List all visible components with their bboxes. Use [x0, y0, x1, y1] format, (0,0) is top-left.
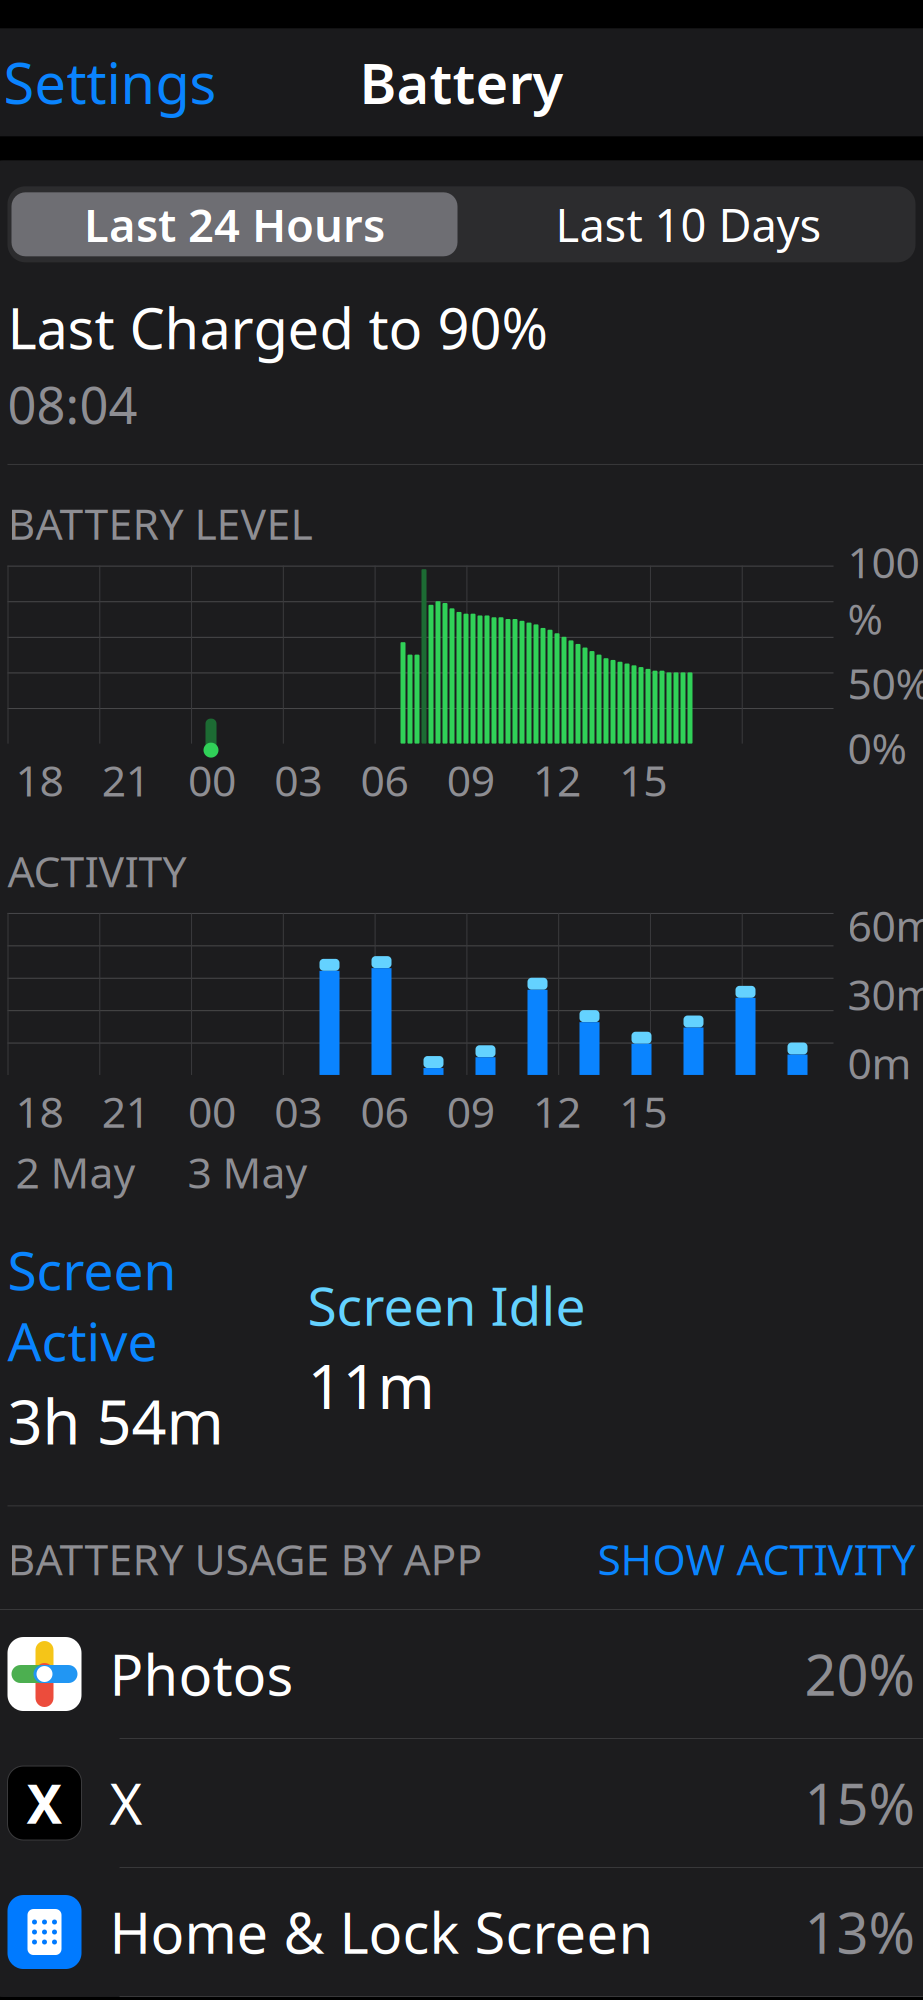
button[interactable]: Photos — [0, 1610, 923, 1738]
staticText: 20% — [804, 1637, 915, 1711]
staticText: 30m — [847, 966, 923, 1022]
staticText: 06 — [360, 752, 408, 808]
staticText: 15 — [619, 752, 667, 808]
staticText: 50% — [847, 655, 923, 711]
staticText: Last 10 Days — [555, 194, 821, 254]
staticText: SHOW ACTIVITY — [597, 1530, 915, 1587]
staticText: 06 — [360, 1083, 408, 1140]
button[interactable]: Last 10 Days — [461, 188, 915, 260]
staticText: X — [109, 1766, 142, 1840]
staticText: 00 — [188, 752, 236, 808]
staticText: 09 — [447, 1083, 495, 1140]
staticText: 0m — [847, 1034, 911, 1091]
staticText: 00 — [188, 1083, 236, 1140]
staticText: 15 — [619, 1083, 667, 1140]
button[interactable]: Home & Lock Screen — [0, 1868, 923, 1996]
staticText: Screen Idle — [307, 1270, 585, 1340]
staticText: 12 — [533, 1083, 581, 1140]
button[interactable]: SHOW ACTIVITY — [597, 1530, 915, 1587]
staticText: ACTIVITY — [7, 842, 186, 899]
staticText: 3 May — [187, 1144, 307, 1200]
staticText: 60m — [847, 897, 923, 954]
staticText: 100% — [847, 533, 919, 647]
staticText: 13% — [804, 1895, 915, 1969]
staticText: 08:04 — [7, 371, 137, 438]
staticText: BATTERY USAGE BY APP — [7, 1530, 482, 1587]
button[interactable]: Settings — [0, 31, 238, 133]
button[interactable]: Last 24 Hours — [7, 188, 461, 260]
staticText: Last 24 Hours — [84, 194, 385, 254]
staticText: 21 — [102, 1083, 150, 1140]
staticText: 18 — [15, 752, 63, 808]
button[interactable]: X — [0, 1739, 923, 1867]
staticText: X — [26, 1768, 62, 1838]
staticText: 0% — [847, 719, 906, 776]
staticText: 11m — [307, 1344, 434, 1426]
staticText: Battery — [359, 45, 563, 119]
staticText: Settings — [3, 45, 216, 119]
staticText: 15% — [804, 1766, 915, 1840]
staticText: 03 — [274, 1083, 322, 1140]
staticText: 09 — [447, 752, 495, 808]
staticText: 03 — [274, 752, 322, 808]
staticText: BATTERY LEVEL — [7, 495, 312, 552]
staticText: 3h 54m — [7, 1380, 223, 1461]
staticText: Screen Active — [7, 1234, 176, 1376]
staticText: Last Charged to 90% — [7, 290, 548, 365]
staticText: Photos — [109, 1637, 293, 1711]
staticText: 2 May — [15, 1144, 135, 1200]
staticText: Home & Lock Screen — [109, 1895, 653, 1969]
staticText: 21 — [102, 752, 150, 808]
staticText: 18 — [15, 1083, 63, 1140]
staticText: 12 — [533, 752, 581, 808]
